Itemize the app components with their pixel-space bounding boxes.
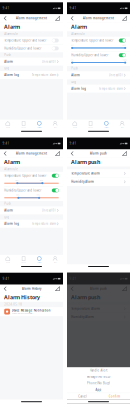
button[interactable]: Mine	[114, 120, 130, 129]
button[interactable]: Back	[2, 14, 9, 22]
button[interactable]: Alarm log	[67, 85, 130, 93]
button[interactable]: Temperature Upper and lower	[67, 37, 130, 44]
button[interactable]: Scan	[121, 14, 128, 22]
button[interactable]: Device Message Notification	[0, 307, 63, 316]
staticText: Phone(No Buzz)	[87, 381, 110, 385]
button[interactable]: Scan	[54, 285, 61, 293]
button[interactable]: Phone(No Buzz)	[67, 380, 130, 386]
button[interactable]: Back	[69, 14, 76, 22]
staticText: Alarm	[71, 73, 80, 77]
staticText: Home	[6, 261, 10, 263]
button[interactable]: Back	[69, 150, 76, 157]
staticText: Humidity Upper and lower	[4, 189, 41, 192]
staticText: Confirm	[109, 395, 120, 398]
staticText: Alarm	[4, 23, 20, 30]
staticText: Humidity Alarm	[71, 180, 94, 183]
staticText: Temperature Upper and lower	[71, 39, 113, 42]
button[interactable]: Back	[69, 285, 76, 293]
button[interactable]: Humidity Upper and lower	[0, 45, 63, 52]
button[interactable]: Scan	[54, 150, 61, 157]
staticText: Push	[71, 67, 78, 70]
staticText: Alarm rule	[4, 167, 18, 171]
staticText: Alarm rule	[71, 32, 85, 36]
staticText: Cancel	[78, 395, 87, 398]
staticText: Temperature Alarm	[71, 307, 100, 310]
staticText: Alarm log	[71, 87, 86, 90]
button[interactable]: Mine	[47, 255, 63, 264]
button[interactable]: Alarm	[0, 206, 63, 214]
staticText: Temperature Upper and lower	[4, 174, 46, 177]
staticText: Unread(0)	[42, 209, 56, 212]
staticText: 10℃	[15, 179, 18, 181]
button[interactable]: Device	[16, 120, 32, 129]
staticText: Smart	[37, 126, 41, 128]
button[interactable]: Temperature Alarm	[67, 305, 130, 313]
staticText: Humidity Alarm	[71, 315, 94, 319]
button[interactable]: Alarm log	[0, 71, 63, 79]
button[interactable]: Scan	[121, 285, 128, 293]
staticText: Temperature Upper and lower	[4, 39, 46, 42]
button[interactable]: Handle Alert	[67, 367, 130, 374]
staticText: Temperature Alarm	[71, 172, 100, 175]
button[interactable]: Alarm	[0, 58, 63, 66]
staticText: Smart	[37, 261, 41, 263]
staticText: Alarm push	[71, 158, 100, 166]
staticText: Log	[4, 66, 9, 70]
staticText: Log	[71, 80, 76, 84]
button[interactable]: Confirm	[98, 393, 130, 400]
staticText: Push	[4, 53, 11, 57]
staticText: Home	[73, 126, 77, 128]
staticText: Alarm log	[4, 222, 19, 225]
staticText: Alarm management	[16, 16, 47, 20]
button[interactable]: Back	[2, 285, 9, 293]
button[interactable]: Back	[2, 150, 9, 157]
staticText: 70%	[36, 194, 39, 196]
button[interactable]: Smart	[31, 255, 47, 264]
staticText: Alarm management	[16, 152, 47, 155]
staticText: Message(No Buzz)	[86, 375, 110, 378]
staticText: Alarm management	[83, 16, 114, 20]
staticText: Temperature alarm	[99, 87, 123, 90]
staticText: 9:41	[70, 142, 77, 145]
button[interactable]: Humidity Alarm	[67, 313, 130, 321]
button[interactable]: Temperature Alarm	[67, 169, 130, 177]
staticText: Alarm log	[4, 73, 19, 77]
staticText: Alarm rule	[4, 32, 18, 36]
staticText: Handle Alert	[89, 369, 107, 372]
staticText: 9:41	[3, 142, 10, 145]
button[interactable]: Message(No Buzz)	[67, 374, 130, 380]
button[interactable]: Home	[67, 120, 83, 129]
staticText: Device	[88, 126, 93, 128]
button[interactable]: Temperature Upper and lower	[0, 172, 63, 179]
button[interactable]: Alarm log	[0, 220, 63, 228]
button[interactable]: Device	[83, 120, 99, 129]
button[interactable]: Home	[0, 255, 16, 264]
staticText: Log	[4, 215, 9, 219]
staticText: Alarm	[4, 209, 13, 212]
button[interactable]: Humidity Alarm	[67, 178, 130, 186]
button[interactable]: Mine	[47, 120, 63, 129]
button[interactable]: Smart	[98, 120, 114, 129]
button[interactable]: Scan	[121, 150, 128, 157]
staticText: Smart	[104, 126, 108, 128]
staticText: Alarm push	[71, 294, 100, 301]
button[interactable]: Temperature Upper and lower	[0, 37, 63, 44]
staticText: 9:41	[70, 277, 77, 280]
staticText: 50℃	[122, 44, 125, 46]
button[interactable]: Humidity Upper and lower	[0, 187, 63, 194]
button[interactable]: Alarm	[67, 71, 130, 79]
staticText: 9:41	[70, 6, 77, 10]
staticText: Mine	[54, 261, 57, 263]
button[interactable]: App	[67, 386, 130, 393]
staticText: Humidity Upper and lower	[4, 47, 41, 50]
staticText: Temperature alarm	[32, 222, 56, 225]
button[interactable]: Humidity Upper and lower	[67, 51, 130, 59]
button[interactable]: Cancel	[67, 393, 98, 400]
staticText: Alarm push	[90, 287, 107, 290]
button[interactable]: Device	[16, 255, 32, 264]
staticText: Unread(0)	[109, 73, 123, 77]
button[interactable]: Smart	[31, 120, 47, 129]
button[interactable]: Scan	[54, 14, 61, 22]
button[interactable]: Home	[0, 120, 16, 129]
